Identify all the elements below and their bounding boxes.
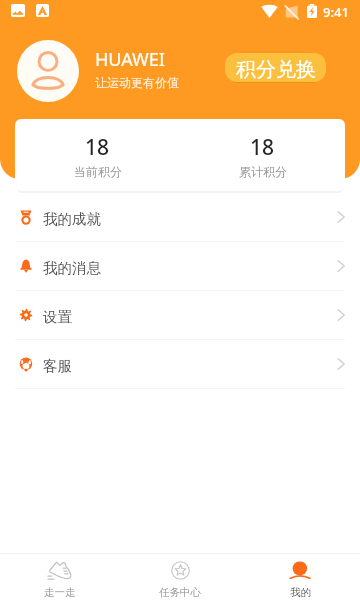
button[interactable]: 设置 — [0, 291, 360, 339]
button[interactable]: 我的成就 — [0, 193, 360, 241]
staticText: 走一走 — [44, 586, 76, 599]
staticText: 积分兑换 — [236, 57, 316, 82]
button[interactable]: 任务中心 — [120, 554, 240, 600]
staticText: 任务中心 — [159, 586, 201, 599]
button[interactable]: 18 — [15, 119, 180, 191]
staticText: 9:41 — [323, 3, 349, 21]
staticText: 我的成就 — [43, 210, 101, 228]
button[interactable]: 我的 — [240, 554, 360, 600]
button[interactable]: Profile avatar — [17, 40, 79, 102]
button[interactable]: 我的消息 — [0, 242, 360, 290]
staticText: 让运动更有价值 — [95, 75, 179, 90]
staticText: HUAWEI — [95, 47, 165, 72]
staticText: 18 — [85, 133, 110, 162]
button[interactable]: 客服 — [0, 340, 360, 388]
staticText: 累计积分 — [239, 164, 287, 179]
staticText: 18 — [250, 133, 275, 162]
staticText: 我的 — [290, 586, 311, 599]
button[interactable]: 18 — [180, 119, 345, 191]
button[interactable]: 积分兑换 — [225, 53, 326, 82]
staticText: 我的消息 — [43, 259, 101, 277]
staticText: 当前积分 — [74, 164, 122, 179]
staticText: 客服 — [43, 357, 72, 375]
button[interactable]: 走一走 — [0, 554, 120, 600]
staticText: 设置 — [43, 308, 72, 326]
